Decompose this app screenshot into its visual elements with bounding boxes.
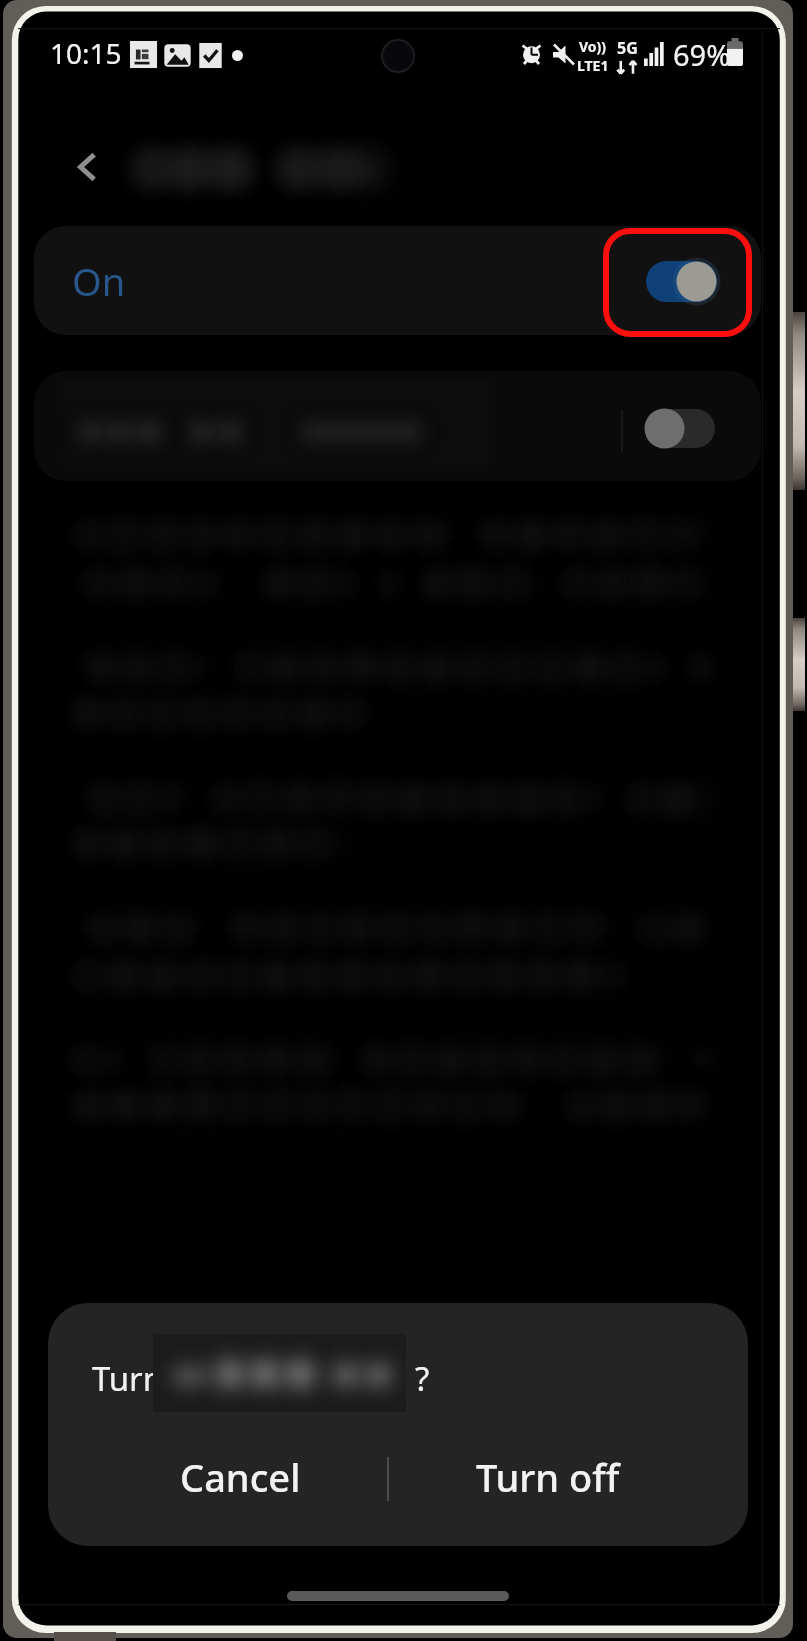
button[interactable]: Toggle on [640,255,724,309]
staticText: LTE1 [577,56,609,75]
button[interactable]: Turn off [390,1427,705,1527]
staticText: Vo)) [579,37,607,56]
button[interactable]: Toggle shortcut [640,403,724,455]
staticText: Cancel [180,1451,301,1503]
button[interactable]: Back [58,137,118,197]
staticText: ? [415,1356,430,1401]
staticText: 10:15 [50,34,122,72]
staticText: Turn [92,1356,164,1401]
staticText: 5G [617,37,638,59]
button[interactable]: On [34,226,761,335]
button[interactable] [34,371,761,481]
staticText: Turn off [476,1451,620,1503]
staticText: 69% [673,35,731,74]
staticText: On [72,255,126,307]
button[interactable]: Cancel [70,1427,410,1527]
